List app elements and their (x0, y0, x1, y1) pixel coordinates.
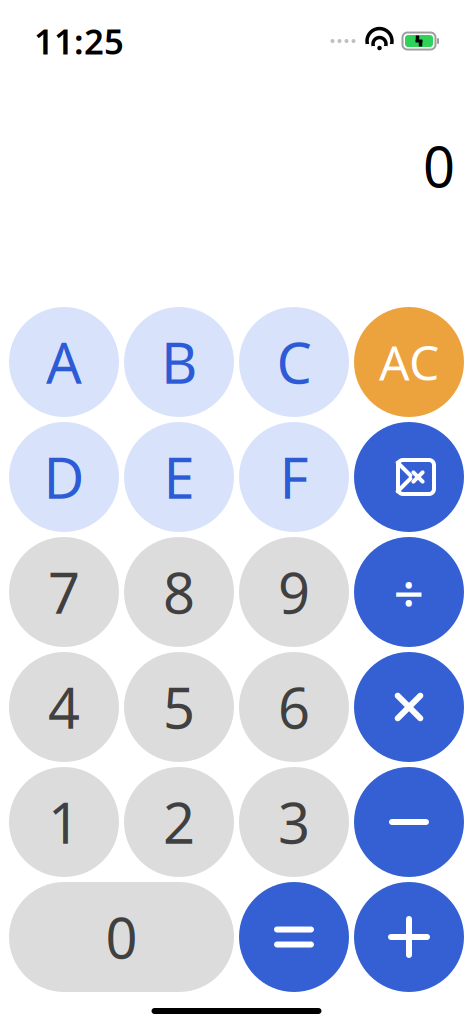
staticText: 8 (163, 555, 195, 629)
button[interactable]: 1 (9, 767, 119, 877)
button[interactable]: 6 (239, 652, 349, 762)
staticText: ÷ (393, 557, 424, 627)
button[interactable]: 2 (124, 767, 234, 877)
button[interactable]: B (124, 307, 234, 417)
staticText: 9 (278, 555, 310, 629)
staticText: F (279, 440, 308, 514)
staticText: A (46, 325, 82, 399)
button[interactable]: 5 (124, 652, 234, 762)
button[interactable]: D (9, 422, 119, 532)
button[interactable]: E (124, 422, 234, 532)
staticText: D (43, 440, 84, 514)
button[interactable]: 4 (9, 652, 119, 762)
button[interactable]: Divide (354, 537, 464, 647)
staticText: 4 (48, 670, 80, 744)
staticText: 3 (278, 785, 310, 859)
staticText: E (163, 440, 194, 514)
button[interactable]: Multiply (354, 652, 464, 762)
button[interactable]: Delete (354, 422, 464, 532)
button[interactable]: A (9, 307, 119, 417)
button[interactable]: AC (354, 307, 464, 417)
button[interactable]: F (239, 422, 349, 532)
button[interactable]: C (239, 307, 349, 417)
staticText: AC (379, 330, 439, 394)
button[interactable]: 7 (9, 537, 119, 647)
button[interactable]: 0 (9, 882, 234, 992)
button[interactable]: 9 (239, 537, 349, 647)
staticText: 0 (105, 900, 137, 974)
staticText: 7 (48, 555, 80, 629)
staticText: 11:25 (34, 18, 124, 64)
button[interactable]: Equals (239, 882, 349, 992)
button[interactable]: Plus (354, 882, 464, 992)
staticText: 5 (163, 670, 195, 744)
staticText: 2 (163, 785, 195, 859)
button[interactable]: 3 (239, 767, 349, 877)
button[interactable]: Minus (354, 767, 464, 877)
staticText: 6 (278, 670, 310, 744)
staticText: 0 (423, 129, 455, 203)
staticText: B (161, 325, 197, 399)
button[interactable]: 8 (124, 537, 234, 647)
staticText: C (276, 325, 311, 399)
staticText: 1 (48, 785, 80, 859)
